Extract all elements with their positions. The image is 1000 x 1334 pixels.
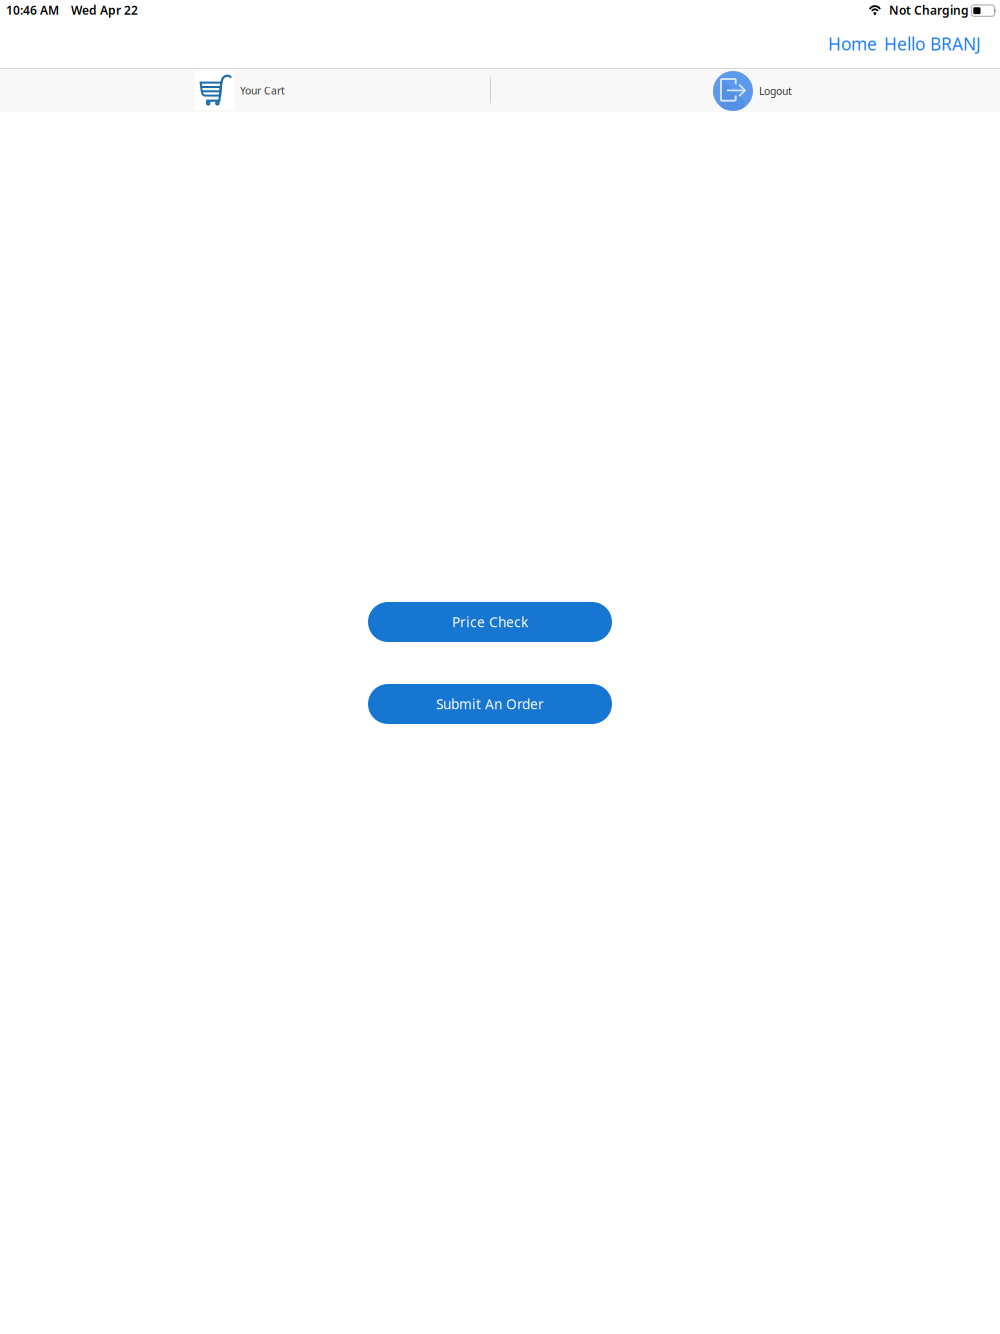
button[interactable]: Home [824,27,881,61]
staticText: Not Charging [889,2,969,18]
button[interactable]: Your Cart [195,71,285,110]
staticText: Home [828,32,877,56]
button[interactable]: Hello BRANJ [880,27,985,61]
staticText: Submit An Order [436,695,544,713]
staticText: Wed Apr 22 [71,2,138,18]
button[interactable]: Submit An Order [368,684,612,724]
staticText: Your Cart [240,83,285,98]
staticText: Price Check [452,613,528,631]
staticText: Hello BRANJ [884,32,981,56]
staticText: 10:46 AM [6,2,59,18]
button[interactable]: Price Check [368,602,612,642]
button[interactable]: Logout [713,71,792,111]
staticText: Logout [759,84,792,98]
